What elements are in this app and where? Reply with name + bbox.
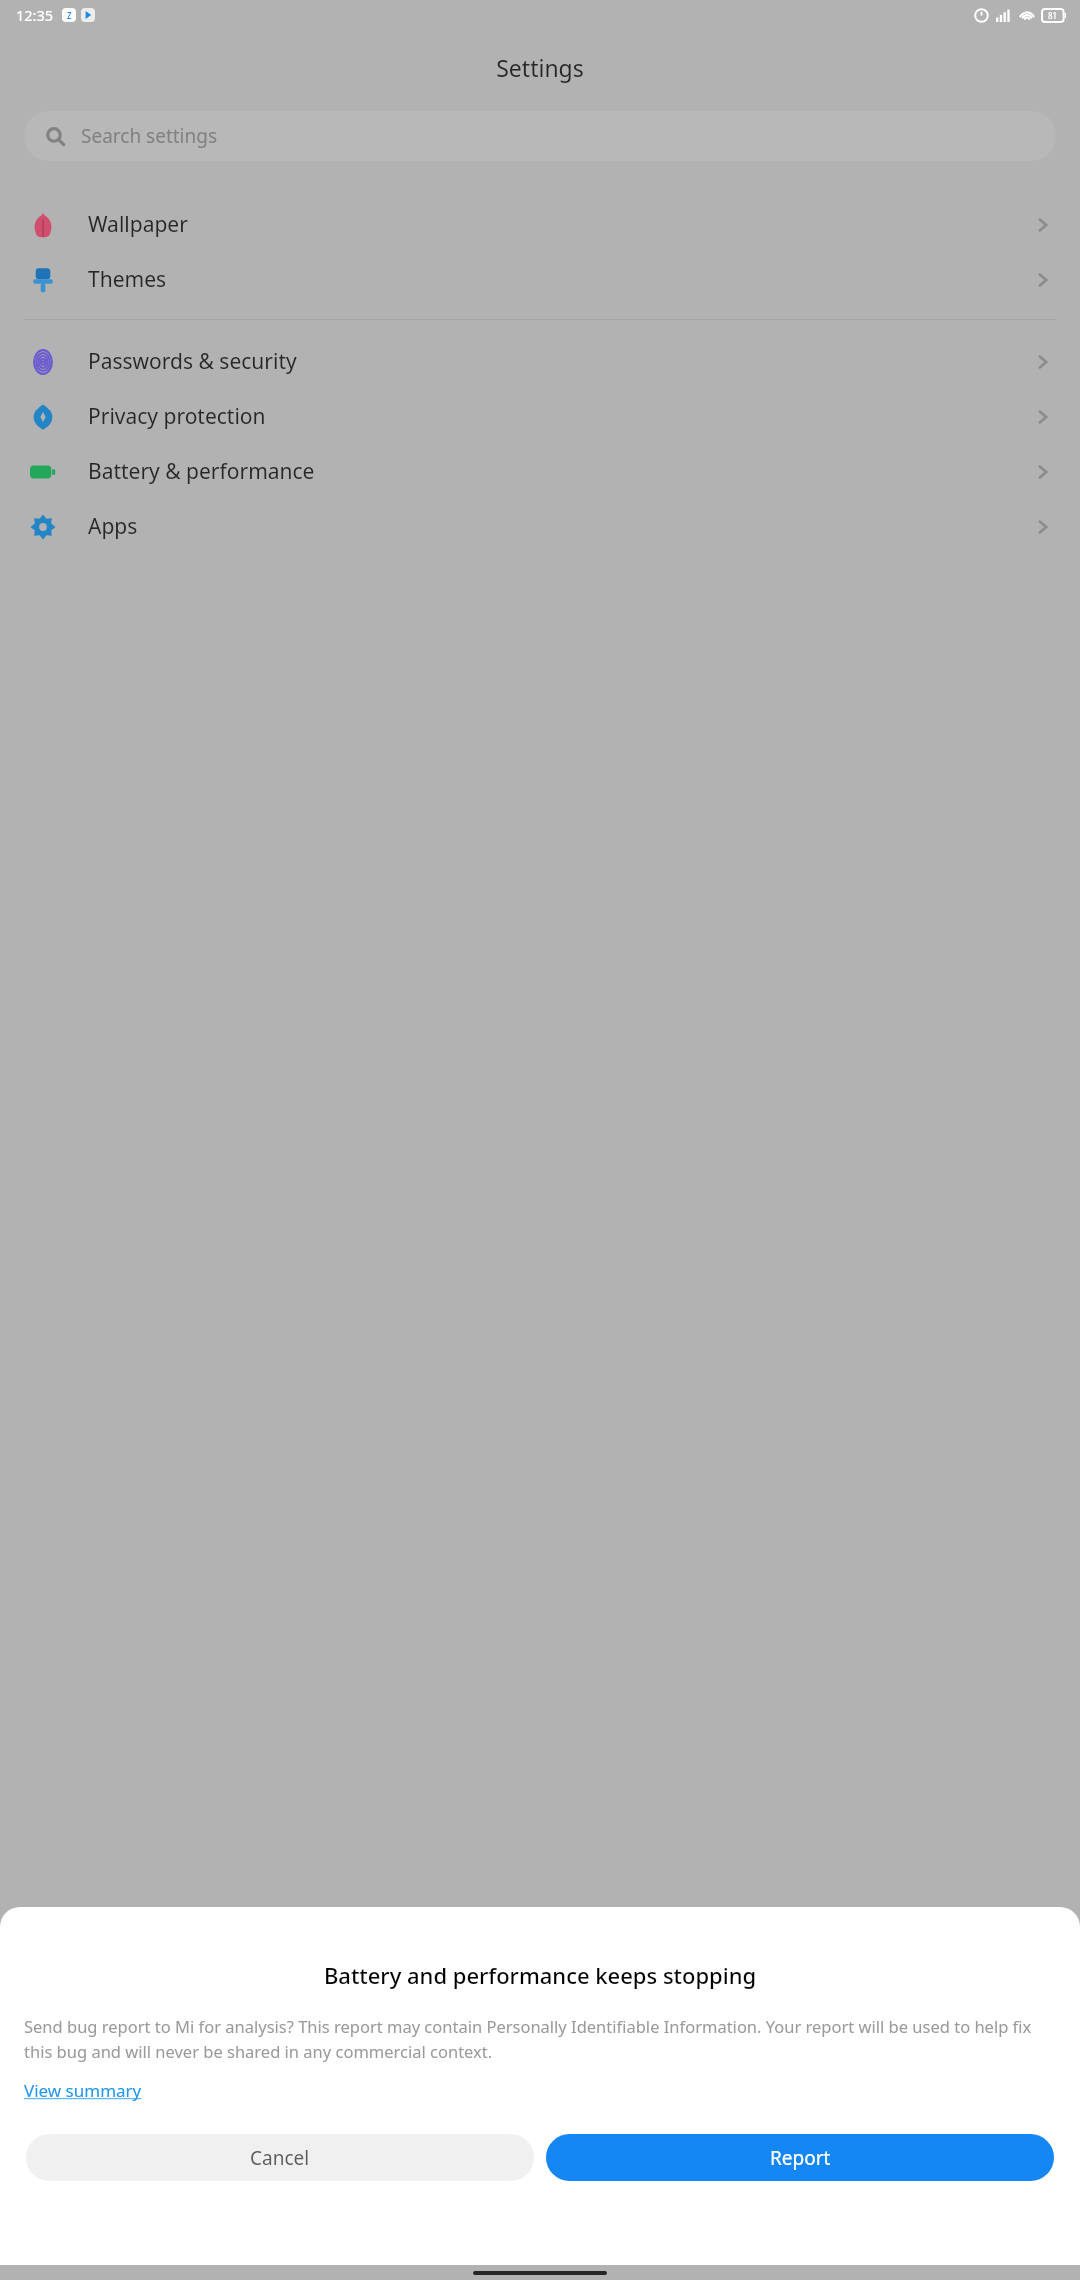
button[interactable]: Apps (0, 499, 1080, 554)
staticText: Wallpaper (88, 210, 1034, 239)
staticText: Battery & performance (88, 457, 1034, 486)
button[interactable]: Cancel (26, 2134, 534, 2181)
button[interactable]: Wallpaper (0, 197, 1080, 252)
button[interactable]: Privacy protection (0, 389, 1080, 444)
staticText: 81 (1048, 10, 1058, 21)
staticText: Send bug report to Mi for analysis? This… (24, 2015, 1056, 2063)
staticText: Cancel (250, 2145, 310, 2171)
button[interactable]: Passwords & security (0, 334, 1080, 389)
staticText: Report (770, 2145, 831, 2171)
button[interactable]: Report (546, 2134, 1054, 2181)
staticText: Search settings (81, 123, 218, 149)
button[interactable]: Battery & performance (0, 444, 1080, 499)
staticText: Z (67, 10, 72, 21)
staticText: Themes (88, 265, 1034, 294)
staticText: Passwords & security (88, 347, 1034, 376)
staticText: Settings (0, 52, 1080, 83)
button[interactable]: Search settings (24, 111, 1056, 161)
staticText: Privacy protection (88, 402, 1034, 431)
staticText: View summary (24, 2079, 142, 2102)
button[interactable]: View summary (24, 2077, 142, 2104)
staticText: 12:35 (16, 5, 54, 25)
staticText: Apps (88, 512, 1034, 541)
button[interactable]: Themes (0, 252, 1080, 307)
staticText: Battery and performance keeps stopping (20, 1960, 1060, 1990)
